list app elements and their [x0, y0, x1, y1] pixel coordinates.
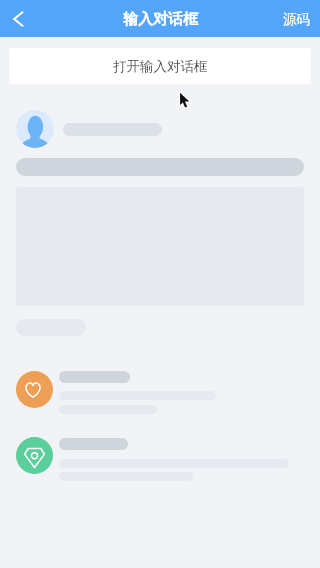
staticText: 输入对话框 [123, 10, 198, 29]
staticText: 打开输入对话框 [113, 58, 208, 75]
button[interactable]: 打开输入对话框 [9, 48, 311, 84]
button[interactable]: Favorite [16, 371, 53, 408]
staticText: 源码 [283, 11, 310, 28]
button[interactable]: Diamond [16, 437, 53, 474]
button[interactable]: Back [0, 0, 36, 36]
button[interactable]: 源码 [271, 10, 320, 27]
